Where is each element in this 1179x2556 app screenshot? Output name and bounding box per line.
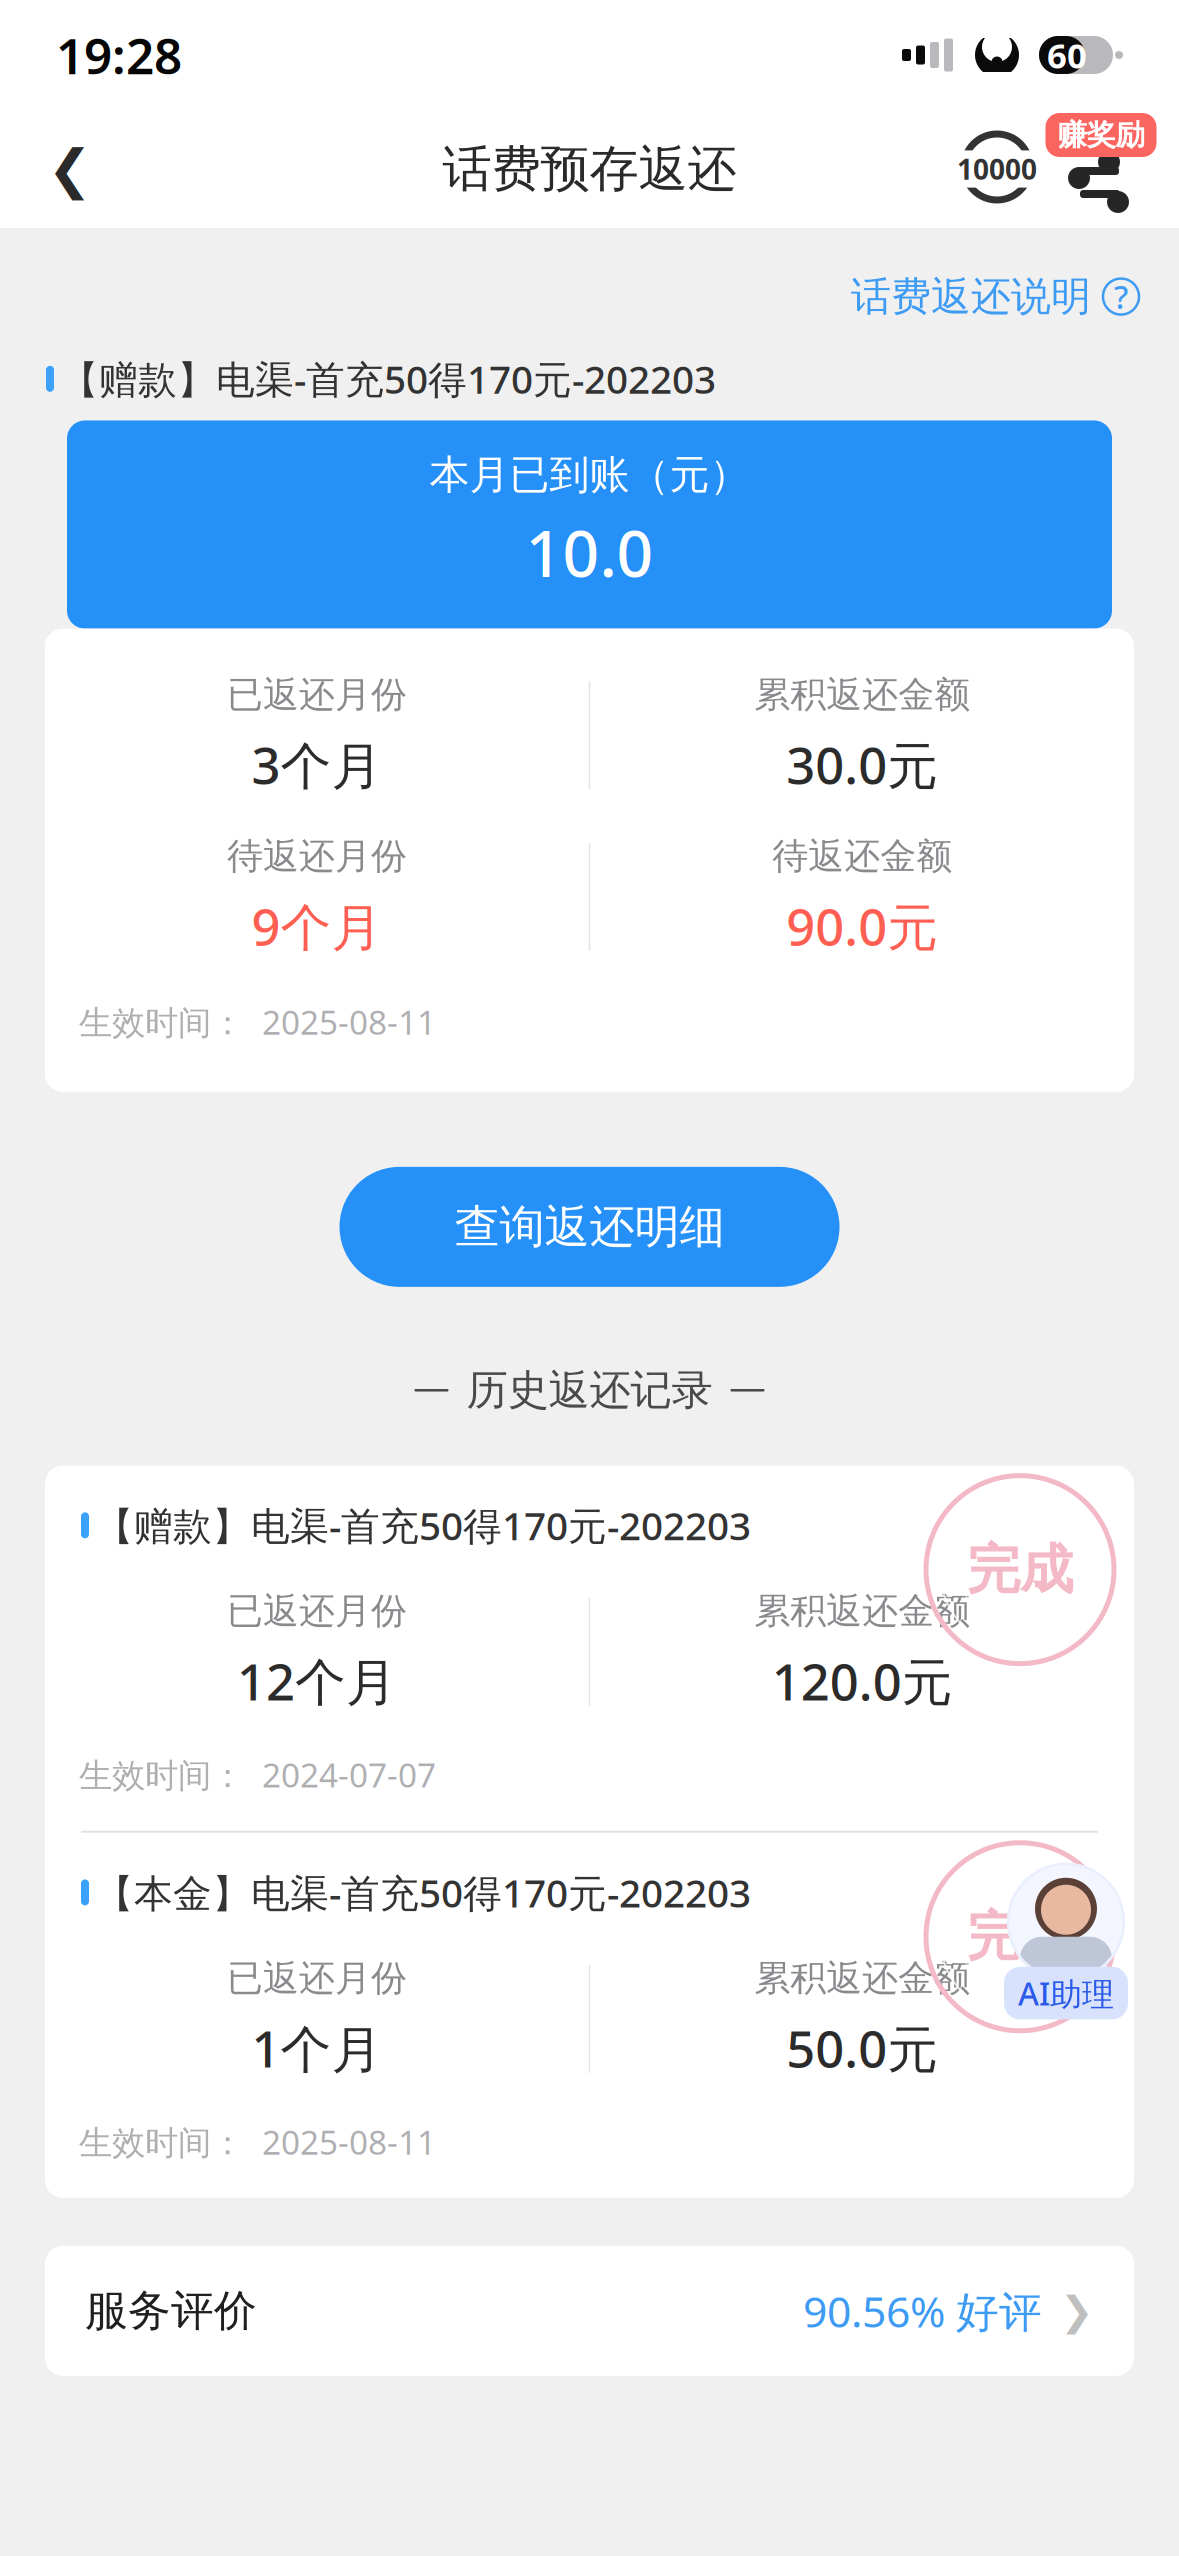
staticText: 12个月 [237,1647,397,1714]
staticText: 待返还月份 [227,834,407,878]
staticText: 19:28 [56,22,182,88]
staticText: 1个月 [251,2014,382,2082]
staticText: 生效时间： 2025-08-11 [79,2120,436,2164]
staticText: 查询返还明细 [454,1199,724,1255]
staticText: 赚奖励 [1057,117,1144,153]
staticText: 生效时间： 2025-08-11 [79,1000,436,1044]
staticText: 服务评价 [85,2285,257,2337]
staticText: 已返还月份 [227,1589,407,1633]
staticText: 【赠款】电渠-首充50得170元-202203 [95,1500,751,1551]
staticText: 本月已到账（元） [429,450,749,500]
staticText: ❮ [47,139,92,199]
staticText: 10.0 [525,510,653,595]
staticText: 完成 [967,1537,1073,1602]
staticText: 30.0元 [786,731,938,798]
staticText: 话费预存返还 [442,139,736,199]
button[interactable]: 分享赚奖励 [1045,113,1157,225]
staticText: ? [1114,275,1128,318]
staticText: 50.0元 [786,2014,938,2082]
staticText: 9个月 [251,892,382,960]
staticText: 待返还金额 [772,834,952,878]
staticText: AI助理 [1018,1972,1114,2014]
staticText: 完成 [967,1904,1073,1969]
button[interactable]: 话费返还说明 [851,264,1139,329]
button[interactable]: 客服热线10000 [949,121,1045,217]
staticText: 120.0元 [772,1647,953,1714]
staticText: 话费返还说明 [851,272,1091,321]
button[interactable]: 返回 [22,121,118,217]
staticText: 生效时间： 2024-07-07 [79,1752,436,1797]
staticText: 已返还月份 [227,1956,407,2000]
staticText: 历史返还记录 [466,1365,712,1416]
staticText: 3个月 [251,731,382,798]
staticText: ❯ [1060,2288,1094,2334]
staticText: 已返还月份 [227,673,407,717]
staticText: 60 [1047,32,1087,78]
staticText: 90.56% 好评 [803,2282,1042,2339]
staticText: 累积返还金额 [754,673,970,717]
staticText: 累积返还金额 [754,1589,970,1633]
staticText: 90.0元 [786,892,938,960]
staticText: 【本金】电渠-首充50得170元-202203 [95,1867,751,1918]
button[interactable]: 服务评价 [45,2246,1134,2376]
staticText: 累积返还金额 [754,1956,970,2000]
staticText: 10000 [957,150,1037,188]
button[interactable]: 查询返还明细 [339,1167,839,1287]
button[interactable]: AI助理 [1004,1863,1128,2019]
staticText: 【赠款】电渠-首充50得170元-202203 [60,353,716,404]
